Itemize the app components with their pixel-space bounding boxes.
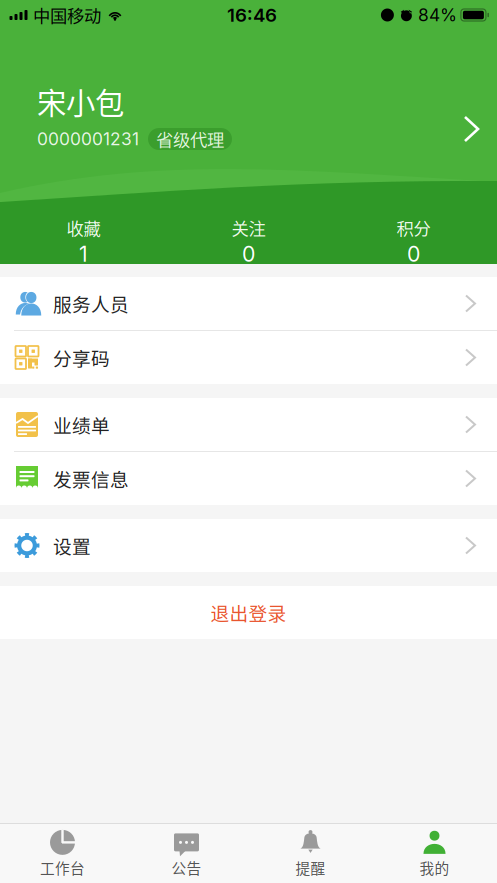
staticText: 84% <box>418 4 457 25</box>
button[interactable]: 分享码 <box>0 331 497 384</box>
staticText: 提醒 <box>295 857 325 878</box>
button[interactable]: 退出登录 <box>0 586 497 639</box>
staticText: 分享码 <box>53 344 110 371</box>
staticText: 1 <box>79 241 88 267</box>
staticText: 积分 <box>396 215 430 240</box>
staticText: 工作台 <box>40 857 85 878</box>
staticText: 发票信息 <box>53 465 129 492</box>
staticText: 宋小包 <box>37 80 124 122</box>
button[interactable]: 公告 <box>124 824 248 883</box>
staticText: 0000001231 <box>37 128 139 149</box>
staticText: 服务人员 <box>53 290 129 317</box>
button[interactable]: 收藏 <box>1 211 166 271</box>
staticText: 设置 <box>53 532 91 559</box>
button[interactable]: 发票信息 <box>0 452 497 505</box>
staticText: 公告 <box>171 857 201 878</box>
staticText: 收藏 <box>66 215 100 240</box>
staticText: 中国移动 <box>33 2 101 28</box>
staticText: 0 <box>242 241 255 267</box>
button[interactable]: 积分 <box>331 211 496 271</box>
staticText: 16:46 <box>227 4 277 26</box>
staticText: 省级代理 <box>156 126 224 152</box>
button[interactable]: 设置 <box>0 519 497 572</box>
button[interactable]: 关注 <box>166 211 331 271</box>
button[interactable]: 提醒 <box>248 824 372 883</box>
button[interactable]: 业绩单 <box>0 398 497 451</box>
staticText: 业绩单 <box>53 411 110 438</box>
button[interactable]: 我的 <box>372 824 496 883</box>
staticText: 关注 <box>231 215 265 240</box>
button[interactable]: 查看个人资料 <box>455 107 488 151</box>
staticText: 退出登录 <box>210 599 286 626</box>
staticText: 我的 <box>419 857 449 878</box>
button[interactable]: 服务人员 <box>0 277 497 330</box>
button[interactable]: 工作台 <box>0 824 124 883</box>
staticText: 0 <box>407 241 420 267</box>
